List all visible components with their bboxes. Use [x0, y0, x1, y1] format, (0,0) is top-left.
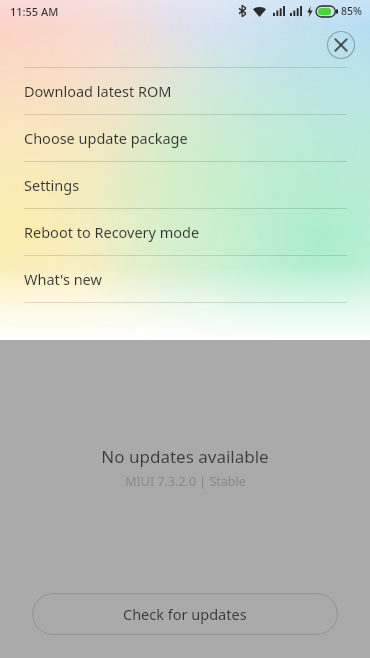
button[interactable]: Download latest ROM — [0, 68, 370, 114]
button[interactable]: Reboot to Recovery mode — [0, 209, 370, 255]
staticText: Check for updates — [123, 604, 247, 624]
staticText: MIUI 7.3.2.0 | Stable — [125, 473, 246, 490]
staticText: Reboot to Recovery mode — [24, 222, 200, 242]
staticText: What's new — [24, 269, 102, 289]
staticText: No updates available — [101, 445, 269, 468]
staticText: Choose update package — [24, 128, 188, 148]
staticText: Settings — [24, 175, 80, 195]
staticText: 11:55 AM — [10, 4, 59, 19]
button[interactable]: Close — [326, 30, 356, 60]
button[interactable]: What's new — [0, 256, 370, 302]
button[interactable]: Choose update package — [0, 115, 370, 161]
button[interactable]: Check for updates — [32, 593, 338, 635]
staticText: 85% — [341, 4, 362, 18]
button[interactable]: Settings — [0, 162, 370, 208]
staticText: Download latest ROM — [24, 81, 172, 101]
